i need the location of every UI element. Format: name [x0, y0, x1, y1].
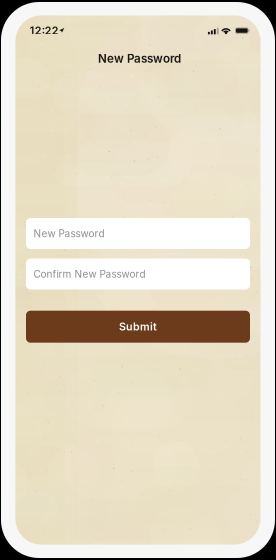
staticText: New Password [33, 227, 104, 240]
button[interactable]: Confirm New Password [26, 258, 250, 289]
staticText: New Password [98, 52, 181, 66]
button[interactable]: Submit [26, 311, 250, 343]
staticText: Submit [119, 320, 157, 333]
button[interactable]: New Password [26, 218, 250, 249]
staticText: Confirm New Password [33, 268, 145, 280]
staticText: 12:22 [30, 24, 59, 37]
